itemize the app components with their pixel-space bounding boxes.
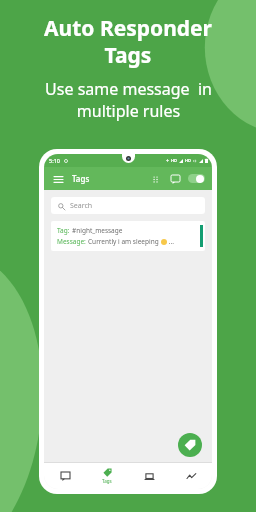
staticText: 5:10 <box>49 157 60 164</box>
staticText: ... <box>167 237 174 246</box>
button[interactable]: Tab <box>44 463 86 489</box>
staticText: Auto Responder Tags <box>44 14 212 69</box>
staticText: Tags <box>72 173 90 184</box>
staticText: HD <box>185 158 191 163</box>
button[interactable]: Search <box>51 197 205 214</box>
button[interactable]: Tag: <box>51 221 205 251</box>
button[interactable]: Tab <box>170 463 212 489</box>
staticText: Search <box>70 201 93 211</box>
button[interactable]: Menu <box>51 172 65 186</box>
button[interactable]: Apps <box>148 172 162 186</box>
button[interactable]: Add tag <box>178 433 202 457</box>
button[interactable]: Toggle <box>188 174 205 183</box>
staticText: Message: <box>57 237 88 246</box>
staticText: HD <box>171 158 177 163</box>
staticText: Use same message in multiple rules <box>45 78 212 122</box>
staticText: #night_message <box>72 226 123 235</box>
button[interactable]: Messages <box>168 172 182 186</box>
button[interactable]: Tab <box>128 463 170 489</box>
staticText: Currently i am sleeping <box>88 237 161 246</box>
button[interactable]: Tags <box>86 463 128 489</box>
staticText: Tags <box>102 478 112 484</box>
staticText: Tag: <box>57 226 72 235</box>
